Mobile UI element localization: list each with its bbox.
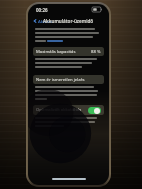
button[interactable]: Optimalizált akkutöltés <box>33 105 104 115</box>
button[interactable]: Back <box>32 17 55 25</box>
staticText: 88 % <box>91 49 101 55</box>
staticText: Akkumulátor-üzemidő <box>43 18 94 24</box>
button[interactable]: Maximális kapacitás <box>33 47 104 56</box>
button[interactable] <box>47 40 63 42</box>
other: Optimalizált akkutöltés kapcsoló <box>88 107 101 114</box>
button[interactable]: Nem ér ismeretlen jelzés <box>33 75 104 84</box>
staticText: 00:26 <box>36 7 48 13</box>
other: Back <box>33 19 37 23</box>
staticText: Akkum. <box>38 18 54 24</box>
staticText: Optimalizált akkutöltés <box>36 107 82 113</box>
staticText: Maximális kapacitás <box>36 49 76 55</box>
staticText: Nem ér ismeretlen jelzés <box>36 77 85 83</box>
